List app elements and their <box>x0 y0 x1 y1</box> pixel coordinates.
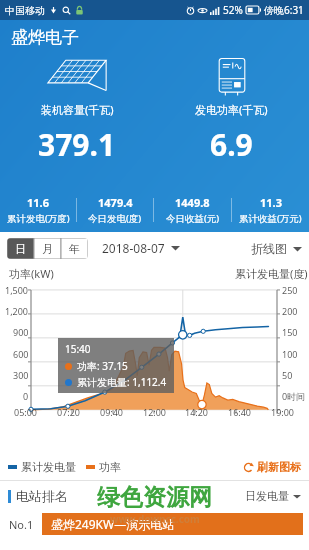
staticText: 绿色资源网 <box>97 483 212 512</box>
staticText: www.downcc.com <box>110 512 200 526</box>
staticText: 功率: 37.15 <box>77 359 128 373</box>
staticText: 发电功率(千瓦) <box>195 102 268 117</box>
staticText: 折线图 <box>251 241 287 256</box>
button[interactable]: 11.6 <box>0 195 76 225</box>
staticText: 年 <box>69 242 80 256</box>
staticText: 今日发电(度) <box>88 212 142 225</box>
staticText: 1,500 <box>5 284 29 296</box>
button[interactable]: 折线图 <box>251 241 302 256</box>
staticText: 累计发电量: 1,112.4 <box>77 375 167 389</box>
button[interactable]: 2018-08-07 <box>102 240 180 256</box>
button[interactable]: 1449.8 <box>154 195 231 225</box>
staticText: 150 <box>282 326 298 338</box>
staticText: 1479.4 <box>98 195 133 210</box>
staticText: 日 <box>15 242 26 256</box>
staticText: 刷新图标 <box>257 460 301 474</box>
button[interactable]: 年 <box>61 238 88 259</box>
button[interactable]: 日 <box>7 238 34 259</box>
staticText: 盛烨电子 <box>11 27 79 48</box>
button[interactable]: 日发电量 <box>245 489 301 503</box>
staticText: 07:20 <box>57 406 81 418</box>
staticText: 功率 <box>99 460 121 474</box>
staticText: 0 <box>23 390 29 402</box>
staticText: 100 <box>282 348 298 360</box>
staticText: 50 <box>282 369 293 381</box>
staticText: 250 <box>282 284 298 296</box>
button[interactable]: 月 <box>34 238 61 259</box>
staticText: 09:40 <box>100 406 124 418</box>
staticText: 14:20 <box>185 406 209 418</box>
staticText: 379.1 <box>38 124 116 165</box>
staticText: 日发电量 <box>245 489 289 503</box>
staticText: 6.9 <box>210 124 253 165</box>
staticText: 0时间 <box>282 390 306 402</box>
staticText: 19:00 <box>271 406 295 418</box>
staticText: 2018-08-07 <box>102 240 165 256</box>
staticText: 中国移动 <box>5 4 45 17</box>
staticText: 功率(kW) <box>9 266 54 281</box>
staticText: 装机容量(千瓦) <box>41 102 114 117</box>
staticText: 盛烨249KW—演示电站 <box>51 516 175 532</box>
staticText: 1449.8 <box>175 195 210 210</box>
staticText: 月 <box>42 242 53 256</box>
staticText: 累计发电量 <box>21 460 76 474</box>
button[interactable]: 累计发电量 <box>8 460 76 474</box>
staticText: 15:40 <box>65 342 91 356</box>
staticText: 52% <box>223 3 243 17</box>
button[interactable]: 功率 <box>86 460 121 474</box>
staticText: 累计发电量(度) <box>235 266 308 281</box>
button[interactable]: 11.3 <box>232 195 309 225</box>
staticText: 05:00 <box>14 406 38 418</box>
button[interactable]: 刷新图标 <box>243 460 301 474</box>
button[interactable]: 1479.4 <box>77 195 153 225</box>
staticText: 200 <box>282 305 298 317</box>
staticText: 300 <box>13 369 29 381</box>
staticText: 900 <box>13 326 29 338</box>
staticText: 电站排名 <box>16 488 68 504</box>
staticText: 傍晚6:31 <box>264 3 304 17</box>
staticText: 1,200 <box>5 305 29 317</box>
staticText: 今日收益(元) <box>166 212 220 225</box>
staticText: 11.6 <box>27 195 49 210</box>
staticText: 累计发电(万度) <box>7 212 70 225</box>
button[interactable]: No.1 <box>0 511 309 537</box>
staticText: 累计收益(万元) <box>239 212 302 225</box>
staticText: 600 <box>13 348 29 360</box>
staticText: 11.3 <box>260 195 282 210</box>
staticText: 16:40 <box>228 406 252 418</box>
staticText: No.1 <box>9 517 34 532</box>
staticText: 12:00 <box>143 406 167 418</box>
